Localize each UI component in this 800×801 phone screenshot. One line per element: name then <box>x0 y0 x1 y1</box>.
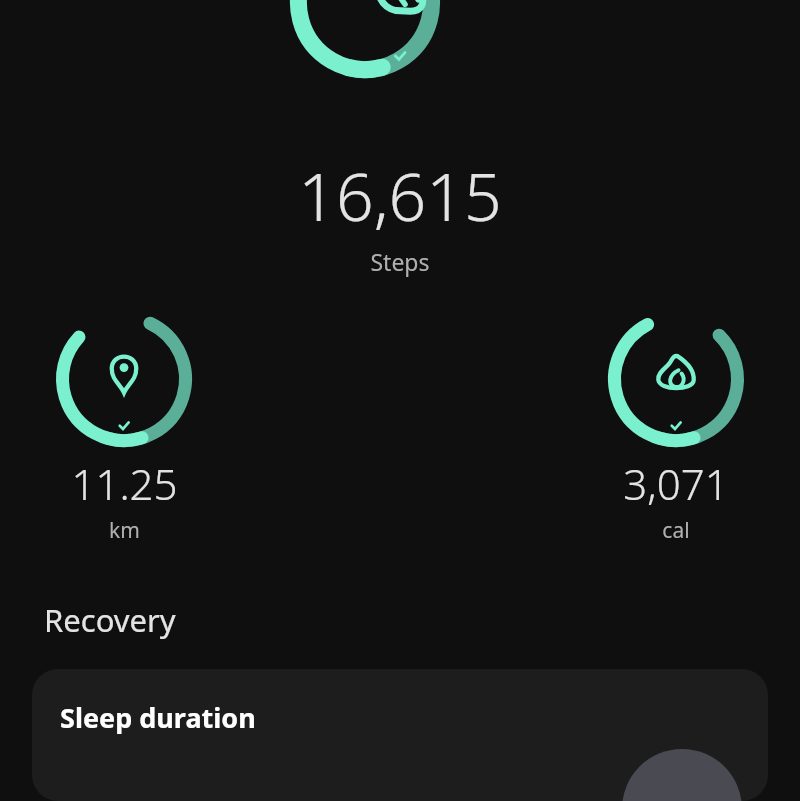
button[interactable]: 11.25 <box>34 311 214 545</box>
staticText: 16,615 <box>0 150 800 240</box>
staticText: 3,071 <box>623 455 729 512</box>
staticText: Recovery <box>44 599 176 641</box>
staticText: 11.25 <box>71 455 178 512</box>
staticText: cal <box>662 516 690 545</box>
staticText: Steps <box>0 246 800 277</box>
staticText: Sleep duration <box>60 699 256 736</box>
button[interactable]: 3,071 <box>586 311 766 545</box>
button[interactable]: Steps progress <box>0 0 800 150</box>
button[interactable]: Sleep duration <box>32 669 768 801</box>
staticText: km <box>109 516 140 545</box>
